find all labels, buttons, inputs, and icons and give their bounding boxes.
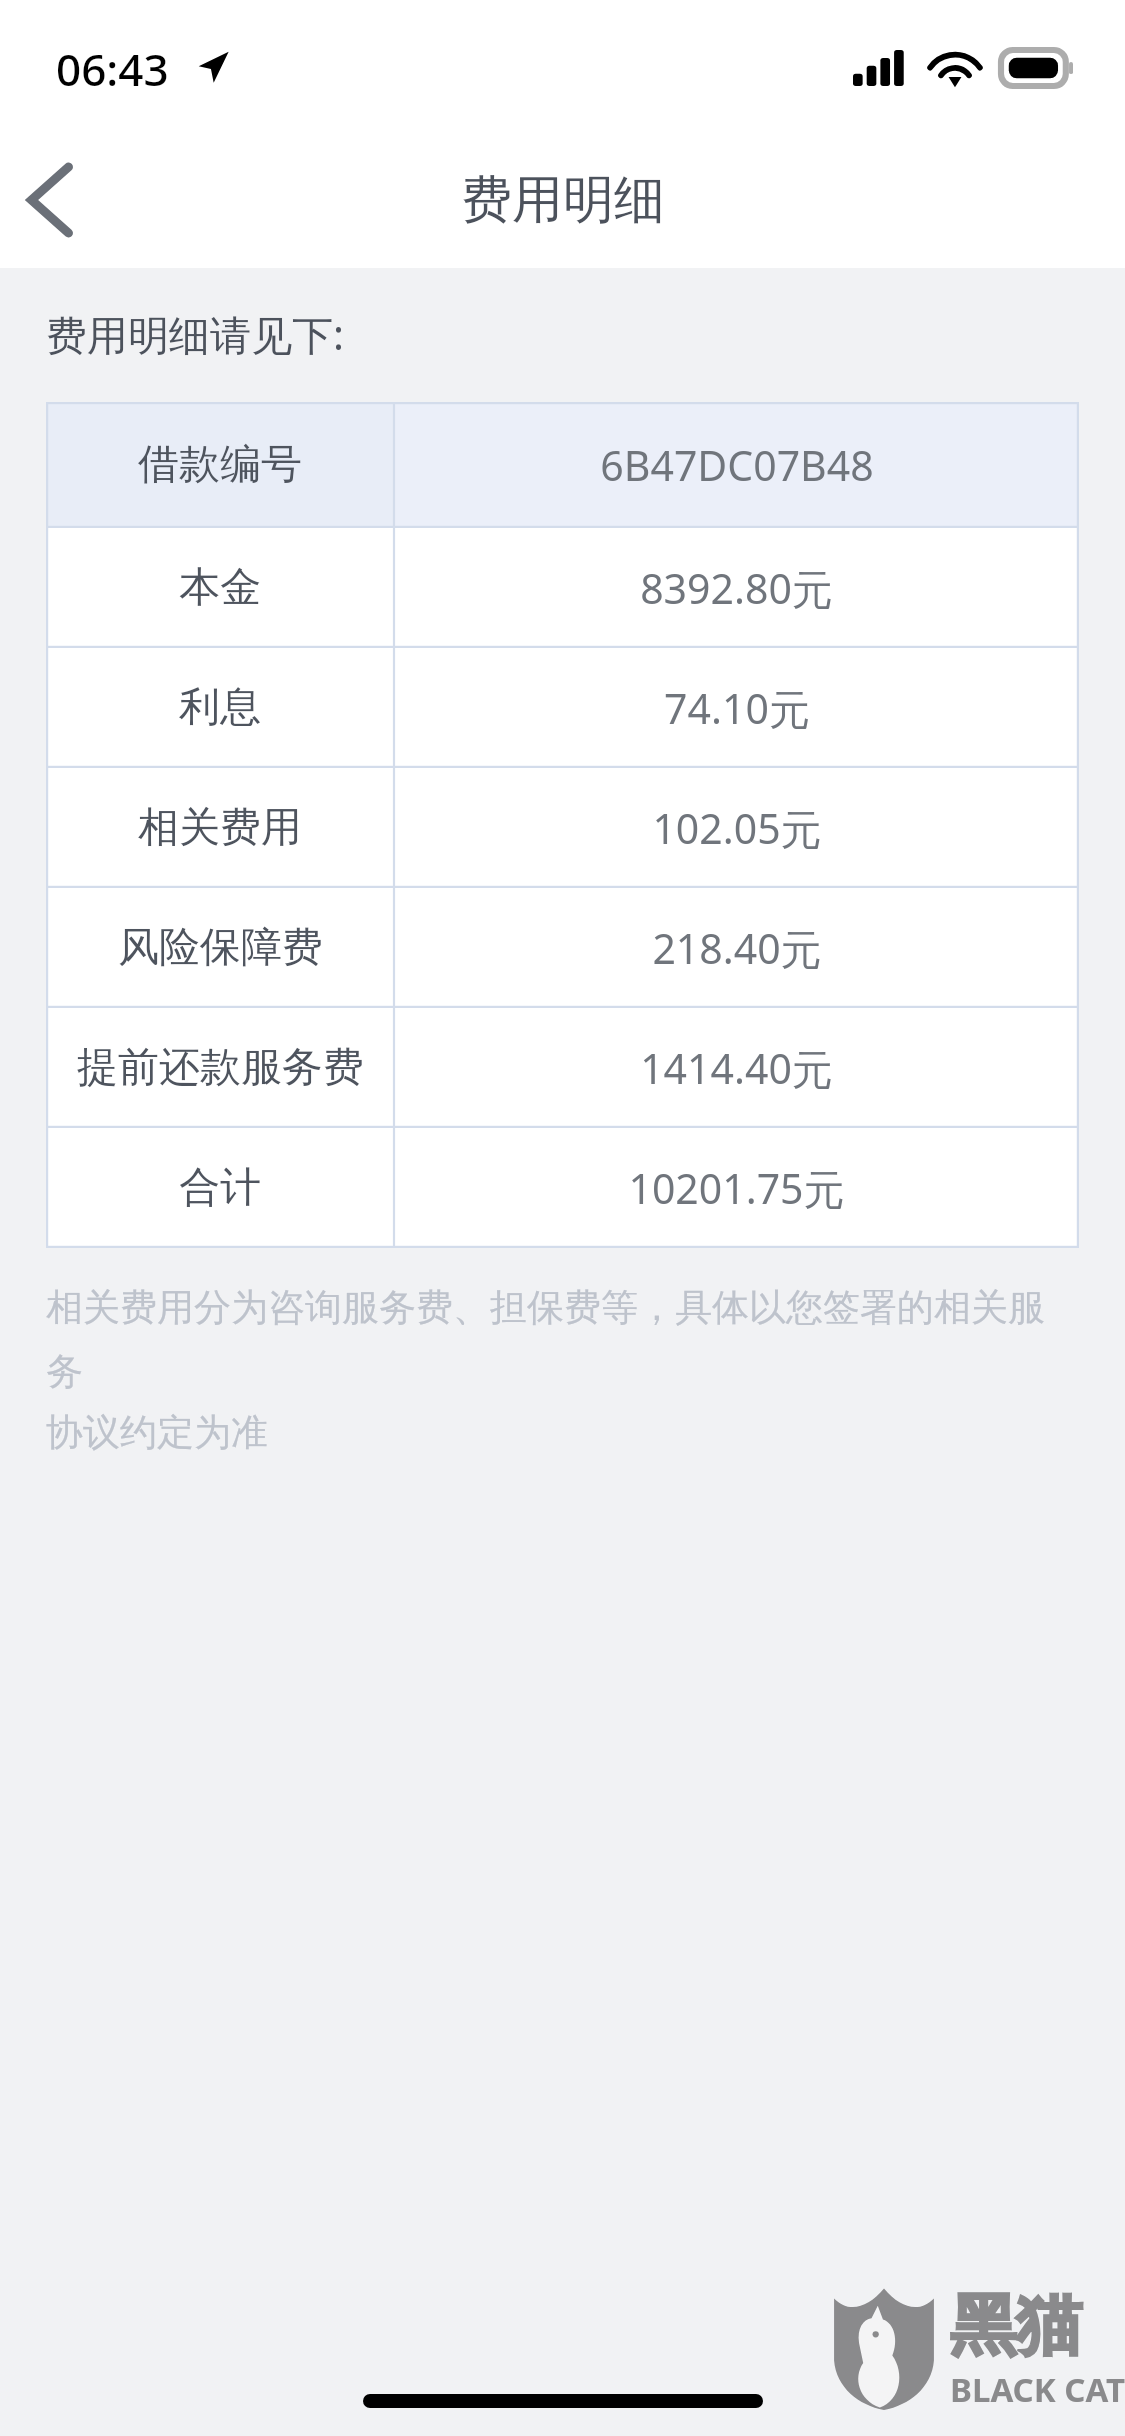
button[interactable]: 合计: [46, 1128, 1079, 1248]
staticText: 06:43: [56, 39, 169, 99]
staticText: 借款编号: [138, 439, 302, 491]
button[interactable]: 本金: [46, 528, 1079, 648]
button[interactable]: 借款编号: [46, 402, 1079, 528]
staticText: 8392.80元: [640, 560, 833, 616]
staticText: 黑猫: [950, 2284, 1082, 2367]
staticText: 1414.40元: [640, 1040, 833, 1096]
staticText: 本金: [179, 562, 261, 614]
staticText: 利息: [179, 682, 261, 734]
button[interactable]: 利息: [46, 648, 1079, 768]
staticText: 相关费用分为咨询服务费、担保费等，具体以您签署的相关服务: [46, 1284, 1079, 1395]
staticText: 102.05元: [652, 800, 822, 856]
staticText: 协议约定为准: [46, 1409, 268, 1456]
staticText: 相关费用: [138, 802, 302, 854]
staticText: 合计: [179, 1162, 261, 1214]
staticText: 费用明细请见下:: [46, 306, 344, 362]
staticText: 费用明细: [461, 168, 665, 232]
button[interactable]: 提前还款服务费: [46, 1008, 1079, 1128]
button[interactable]: 风险保障费: [46, 888, 1079, 1008]
staticText: 风险保障费: [118, 922, 323, 974]
staticText: BLACK CAT: [950, 2367, 1125, 2412]
staticText: 74.10元: [664, 680, 810, 736]
staticText: 10201.75元: [628, 1160, 845, 1216]
staticText: 提前还款服务费: [77, 1042, 364, 1094]
button[interactable]: 相关费用: [46, 768, 1079, 888]
staticText: 6B47DC07B48: [600, 437, 874, 493]
staticText: 218.40元: [652, 920, 822, 976]
button[interactable]: Back: [0, 132, 130, 268]
